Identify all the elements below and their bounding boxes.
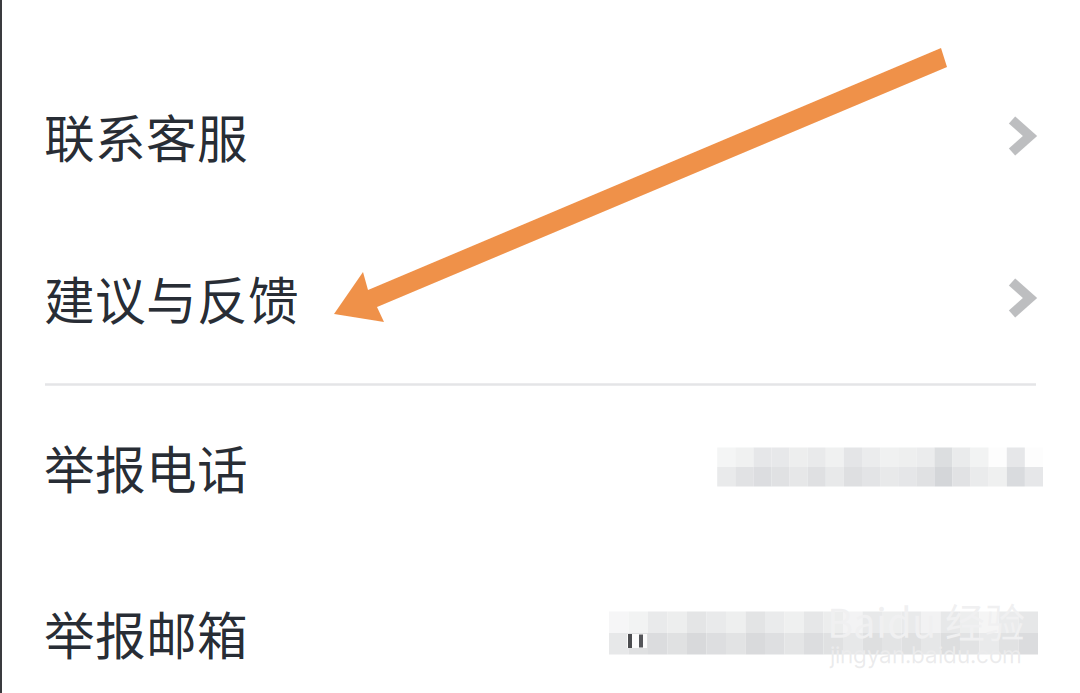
staticText: 建议与反馈 <box>44 261 299 335</box>
button[interactable]: 举报邮箱 <box>0 552 1080 693</box>
staticText: 举报邮箱 <box>44 596 248 670</box>
staticText: Baidu 经验 <box>827 591 1025 649</box>
staticText: 举报电话 <box>44 430 248 504</box>
staticText: jingyan.baidu.com <box>830 641 1022 669</box>
button[interactable]: 建议与反馈 <box>0 217 1080 379</box>
staticText: 联系客服 <box>44 99 248 173</box>
button[interactable]: 举报电话 <box>0 386 1080 548</box>
button[interactable]: 联系客服 <box>0 55 1080 217</box>
